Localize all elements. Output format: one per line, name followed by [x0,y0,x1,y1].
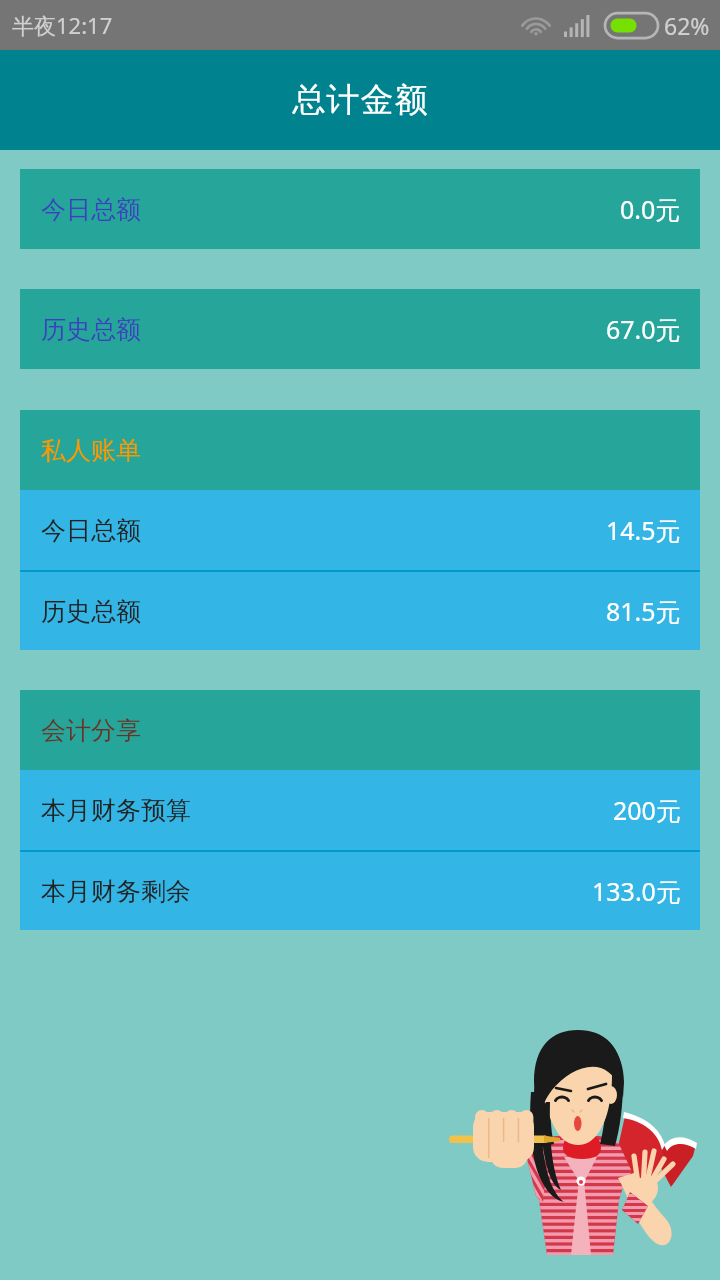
staticText: 本月财务预算 [41,795,191,826]
other: Mobile signal [564,15,592,37]
button[interactable]: 历史总额 [20,572,700,650]
staticText: 历史总额 [41,596,141,627]
button[interactable]: 本月财务剩余 [20,852,700,930]
staticText: 62% [664,10,710,41]
staticText: 半夜12:17 [12,10,113,40]
staticText: 总计金额 [292,79,428,121]
staticText: 67.0元 [606,312,681,346]
staticText: 14.5元 [606,513,681,547]
staticText: 今日总额 [41,194,141,225]
other: Battery 62 percent [605,13,658,38]
button[interactable]: 本月财务预算 [20,770,700,850]
button[interactable]: 历史总额 [20,289,700,369]
staticText: 会计分享 [41,715,141,746]
staticText: 本月财务剩余 [41,876,191,907]
button[interactable]: 今日总额 [20,490,700,570]
button[interactable]: 今日总额 [20,169,700,249]
staticText: 今日总额 [41,515,141,546]
staticText: 81.5元 [606,594,681,628]
staticText: 历史总额 [41,314,141,345]
staticText: 0.0元 [620,192,681,226]
button[interactable]: 会计分享 [20,690,700,770]
staticText: 200元 [613,793,681,827]
other: Wi-Fi signal [520,14,552,37]
staticText: 私人账单 [41,435,141,466]
button[interactable]: 私人账单 [20,410,700,490]
staticText: 133.0元 [592,874,681,908]
